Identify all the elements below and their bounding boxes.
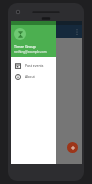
button[interactable]: About bbox=[11, 71, 56, 82]
staticText: nothing@example.com bbox=[14, 50, 47, 54]
button[interactable]: Add bbox=[67, 142, 78, 153]
button[interactable]: More options bbox=[74, 29, 80, 35]
staticText: Timer Group bbox=[14, 44, 36, 49]
button[interactable] bbox=[11, 21, 82, 164]
button[interactable]: Past events bbox=[11, 60, 56, 71]
staticText: About bbox=[25, 74, 35, 79]
staticText: Past events bbox=[25, 63, 44, 68]
button[interactable]: Timer Group bbox=[11, 21, 56, 57]
